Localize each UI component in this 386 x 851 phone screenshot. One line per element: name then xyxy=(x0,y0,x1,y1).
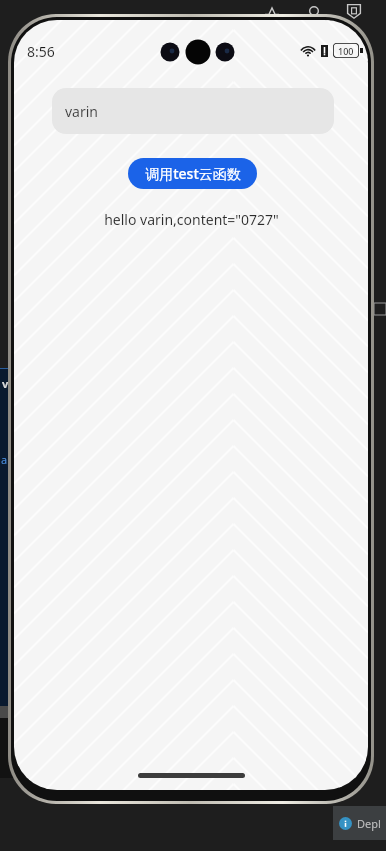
staticText: 100 xyxy=(338,45,354,57)
staticText: Depl xyxy=(357,816,381,831)
button[interactable]: 调用test云函数 xyxy=(128,158,257,189)
staticText: 调用test云函数 xyxy=(145,164,241,183)
staticText: vl xyxy=(2,376,12,391)
staticText: 8:56 xyxy=(27,42,55,61)
staticText: hello varin,content="0727" xyxy=(104,210,279,229)
button[interactable]: Tool window xyxy=(374,303,386,315)
button[interactable]: Run xyxy=(305,2,323,20)
button[interactable]: Device Manager xyxy=(344,1,364,21)
staticText: varin xyxy=(65,102,99,121)
button[interactable]: varin xyxy=(52,88,334,134)
button[interactable]: Bookmark xyxy=(262,2,282,22)
staticText: a xyxy=(1,452,8,467)
button[interactable]: Depl xyxy=(333,806,386,840)
